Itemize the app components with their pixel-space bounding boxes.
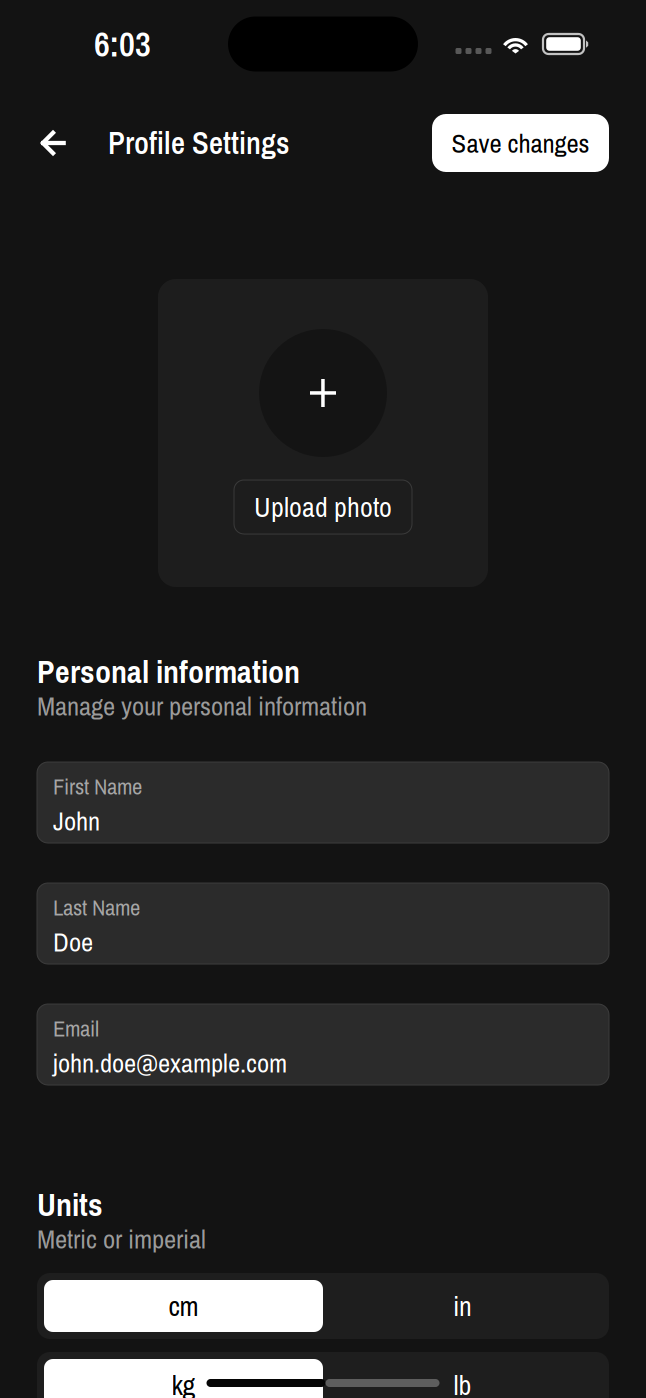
button[interactable]: lb [323, 1359, 602, 1398]
button[interactable]: Email [37, 1004, 609, 1085]
staticText: First Name [53, 771, 142, 801]
staticText: Profile Settings [108, 122, 289, 164]
staticText: Doe [53, 924, 93, 960]
staticText: Manage your personal information [37, 688, 367, 724]
staticText: John [53, 803, 100, 839]
staticText: Personal information [37, 650, 300, 693]
staticText: kg [171, 1366, 195, 1398]
button[interactable]: Back [29, 114, 77, 172]
button[interactable]: in [323, 1280, 602, 1332]
staticText: in [453, 1287, 472, 1325]
button[interactable]: First Name [37, 762, 609, 843]
staticText: cm [168, 1287, 198, 1325]
staticText: 6:03 [94, 21, 151, 67]
button[interactable]: Last Name [37, 883, 609, 964]
staticText: lb [453, 1366, 471, 1398]
staticText: Units [37, 1183, 103, 1226]
staticText: Metric or imperial [37, 1221, 206, 1257]
button[interactable]: kg [44, 1359, 323, 1398]
staticText: john.doe@example.com [53, 1045, 287, 1081]
staticText: Email [53, 1013, 99, 1043]
button[interactable]: cm [44, 1280, 323, 1332]
button[interactable]: Save changes [432, 114, 609, 172]
staticText: Save changes [451, 125, 589, 161]
staticText: Last Name [53, 892, 140, 922]
button[interactable]: Upload photo [234, 480, 412, 534]
staticText: Upload photo [254, 488, 392, 526]
